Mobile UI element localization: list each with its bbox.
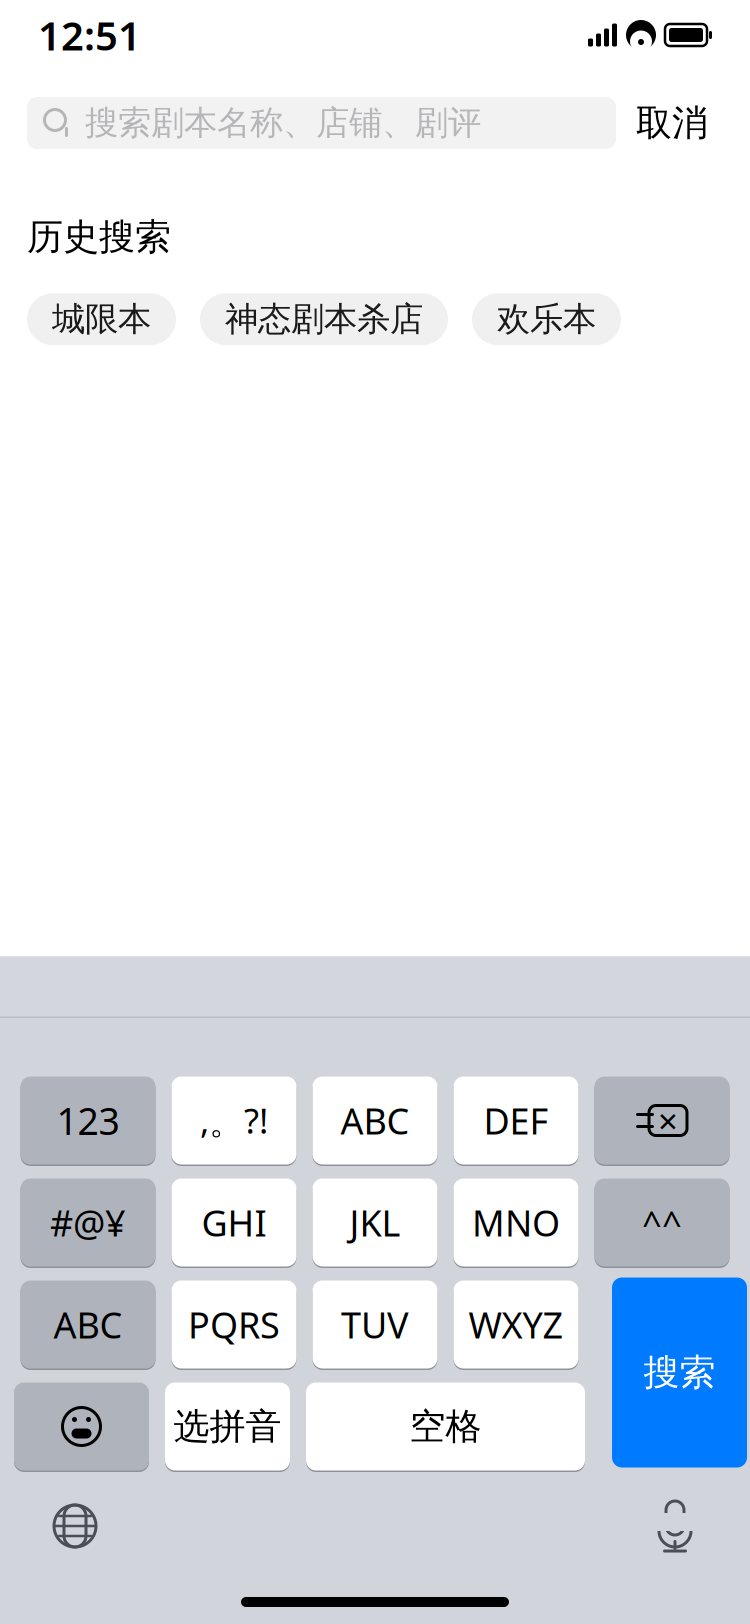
staticText: PQRS [188,1301,280,1348]
button[interactable]: 城限本 [27,293,176,345]
staticText: JKL [349,1199,400,1246]
button[interactable]: Delete [594,1075,729,1166]
staticText: 欢乐本 [497,299,596,340]
button[interactable]: ABC [312,1075,437,1166]
button[interactable]: 搜索剧本名称、店铺、剧评 [27,97,616,149]
staticText: MNO [472,1199,560,1246]
button[interactable]: PQRS [171,1279,296,1370]
button[interactable]: 选拼音 [165,1381,290,1472]
staticText: ,。?! [200,1097,268,1144]
staticText: TUV [341,1301,409,1348]
staticText: 城限本 [52,299,151,340]
staticText: × [658,1097,678,1143]
button[interactable]: Switch keyboard [38,1503,112,1549]
staticText: 12:51 [38,8,141,61]
staticText: GHI [201,1199,266,1246]
button[interactable]: JKL [312,1177,437,1268]
button[interactable]: Emoji [14,1381,149,1472]
staticText: 123 [56,1096,119,1145]
button[interactable]: ,。?! [171,1075,296,1166]
button[interactable]: 搜索 [612,1277,747,1467]
button[interactable]: MNO [453,1177,578,1268]
button[interactable]: 123 [20,1075,155,1166]
button[interactable]: 空格 [306,1381,585,1472]
staticText: DEF [483,1097,548,1144]
staticText: 选拼音 [173,1404,281,1449]
staticText: 取消 [636,101,708,145]
button[interactable]: DEF [453,1075,578,1166]
button[interactable]: 取消 [616,97,728,149]
staticText: ABC [53,1301,122,1348]
button[interactable]: ABC [20,1279,155,1370]
staticText: WXYZ [468,1301,563,1348]
staticText: 搜索 [643,1350,715,1395]
staticText: ^^ [642,1199,682,1245]
button[interactable]: WXYZ [453,1279,578,1370]
button[interactable]: ^^ [594,1177,729,1268]
button[interactable]: 欢乐本 [472,293,621,345]
button[interactable]: GHI [171,1177,296,1268]
button[interactable]: Dictation [638,1498,712,1554]
button[interactable]: #@¥ [20,1177,155,1268]
staticText: 搜索剧本名称、店铺、剧评 [85,102,481,143]
button[interactable]: TUV [312,1279,437,1370]
staticText: 神态剧本杀店 [225,299,423,340]
button[interactable]: 神态剧本杀店 [200,293,448,345]
staticText: ABC [340,1097,409,1144]
staticText: 空格 [409,1404,481,1449]
staticText: 历史搜索 [27,215,171,259]
staticText: #@¥ [50,1199,126,1246]
